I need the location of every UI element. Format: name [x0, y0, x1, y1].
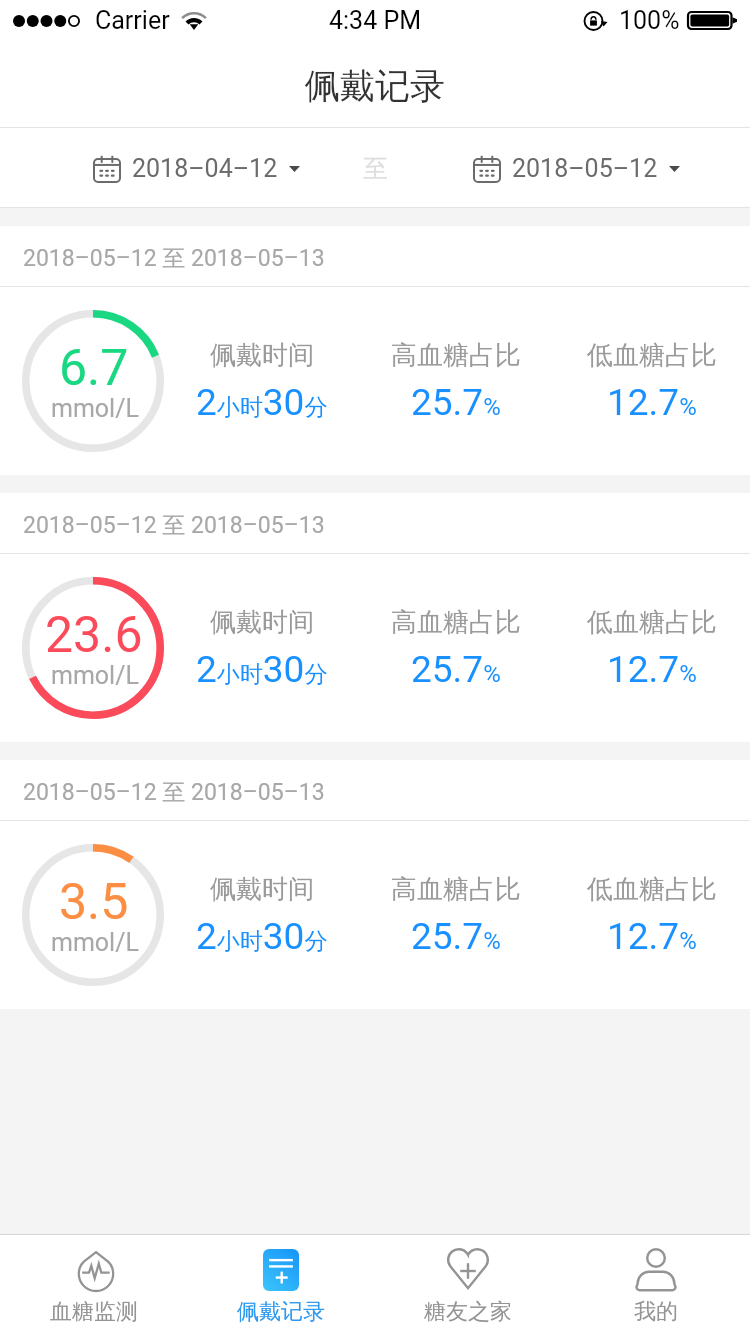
staticText: 23.6 [45, 606, 143, 665]
staticText: 6.7 [59, 339, 129, 398]
staticText: 佩戴时间 [210, 873, 314, 906]
staticText: mmol/L [51, 928, 139, 957]
staticText: 25.7% [411, 648, 501, 691]
staticText: 糖友之家 [424, 1298, 512, 1326]
staticText: 佩戴记录 [305, 64, 445, 108]
staticText: 高血糖占比 [391, 873, 521, 906]
button[interactable]: Profile [562, 1235, 750, 1334]
staticText: 我的 [634, 1298, 678, 1326]
staticText: 2018–05–12 至 2018–05–13 [23, 778, 325, 807]
staticText: mmol/L [51, 661, 139, 690]
staticText: Carrier [95, 6, 170, 35]
staticText: 高血糖占比 [391, 606, 521, 639]
staticText: 25.7% [411, 915, 501, 958]
staticText: mmol/L [51, 394, 139, 423]
staticText: 佩戴记录 [237, 1298, 325, 1326]
staticText: 2018–05–12 至 2018–05–13 [23, 511, 325, 540]
staticText: 12.7% [607, 648, 697, 691]
staticText: 至 [363, 153, 388, 184]
button[interactable]: Blood glucose monitoring [0, 1235, 187, 1334]
staticText: 低血糖占比 [587, 339, 717, 372]
button[interactable]: 23.6 [0, 554, 750, 742]
button[interactable]: 2018–05–12 [465, 144, 688, 193]
staticText: 12.7% [607, 915, 697, 958]
button[interactable]: 3.5 [0, 821, 750, 1009]
staticText: 佩戴时间 [210, 606, 314, 639]
button[interactable]: Wear records [187, 1235, 374, 1334]
staticText: 2小时30分 [196, 648, 328, 691]
staticText: 2018–04–12 [132, 154, 278, 183]
staticText: 100% [619, 6, 680, 35]
button[interactable]: 6.7 [0, 287, 750, 475]
staticText: 3.5 [59, 873, 129, 932]
staticText: 佩戴时间 [210, 339, 314, 372]
staticText: 4:34 PM [329, 6, 422, 35]
staticText: 2018–05–12 [512, 154, 658, 183]
staticText: 低血糖占比 [587, 606, 717, 639]
staticText: 高血糖占比 [391, 339, 521, 372]
button[interactable]: Community [374, 1235, 562, 1334]
staticText: 25.7% [411, 381, 501, 424]
staticText: 2小时30分 [196, 915, 328, 958]
button[interactable]: 2018–04–12 [85, 144, 308, 193]
staticText: 低血糖占比 [587, 873, 717, 906]
staticText: 2018–05–12 至 2018–05–13 [23, 244, 325, 273]
staticText: 12.7% [607, 381, 697, 424]
staticText: 2小时30分 [196, 381, 328, 424]
staticText: 血糖监测 [50, 1298, 138, 1326]
